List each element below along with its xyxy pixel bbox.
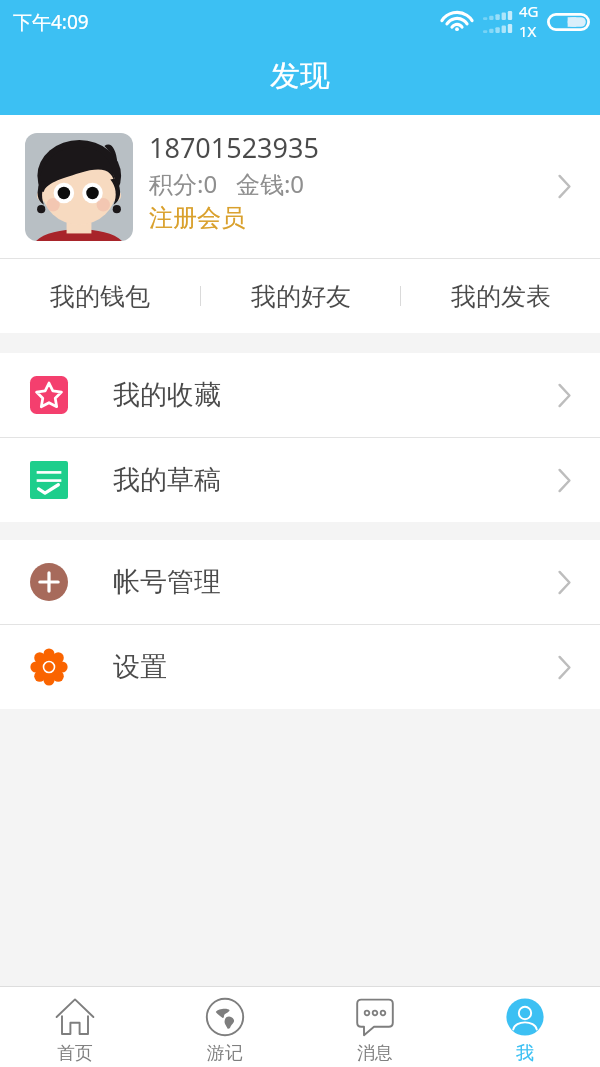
button[interactable]: 帐号管理: [0, 540, 600, 624]
staticText: 帐号管理: [113, 565, 558, 599]
staticText: 1X: [519, 21, 537, 41]
staticText: 我的好友: [251, 281, 351, 312]
button[interactable]: 我的好友: [201, 259, 400, 333]
button[interactable]: Travel notes: [150, 987, 300, 1067]
button[interactable]: Home: [0, 987, 150, 1067]
button[interactable]: 我的收藏: [0, 353, 600, 437]
staticText: 设置: [113, 650, 558, 684]
staticText: 注册会员: [149, 203, 245, 233]
button[interactable]: 我的钱包: [0, 259, 200, 333]
staticText: 消息: [357, 1042, 393, 1065]
staticText: 积分:0 金钱:0: [149, 167, 305, 200]
staticText: 我的钱包: [50, 281, 150, 312]
button[interactable]: 设置: [0, 625, 600, 709]
staticText: 我的草稿: [113, 463, 558, 497]
staticText: 我: [516, 1042, 534, 1065]
staticText: 我的收藏: [113, 378, 558, 412]
staticText: 发现: [270, 57, 330, 95]
staticText: 我的发表: [451, 281, 551, 312]
staticText: 游记: [207, 1042, 243, 1065]
staticText: 18701523935: [149, 129, 319, 166]
staticText: 首页: [57, 1042, 93, 1065]
button[interactable]: Me: [450, 987, 600, 1067]
button[interactable]: Messages: [300, 987, 450, 1067]
button[interactable]: 我的发表: [401, 259, 600, 333]
staticText: 下午4:09: [13, 9, 89, 35]
button[interactable]: 18701523935: [0, 115, 600, 258]
staticText: 4G: [519, 1, 539, 21]
button[interactable]: 我的草稿: [0, 438, 600, 522]
